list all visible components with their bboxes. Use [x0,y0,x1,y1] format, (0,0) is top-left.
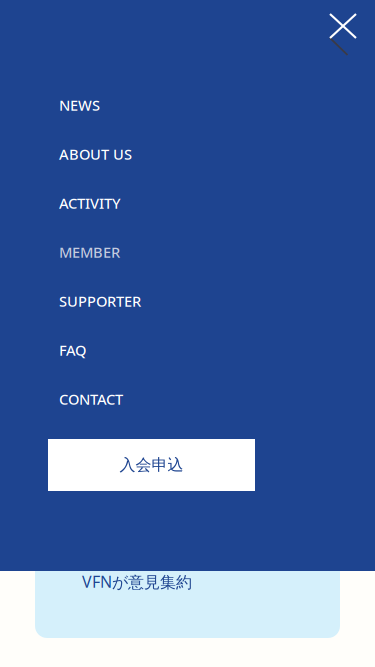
staticText: ACTIVITY [59,193,121,213]
staticText: ABOUT US [59,144,132,164]
button[interactable]: SUPPORTER [59,291,317,311]
button[interactable]: ABOUT US [59,144,317,164]
button[interactable]: MEMBER [59,242,317,262]
staticText: CONTACT [59,389,123,409]
staticText: NEWS [59,95,100,115]
button[interactable]: Close menu [320,8,366,62]
button[interactable]: CONTACT [59,389,317,409]
staticText: SUPPORTER [59,291,141,311]
button[interactable]: FAQ [59,340,317,360]
staticText: VFNが意見集約 [82,571,192,592]
button[interactable]: NEWS [59,95,317,115]
staticText: FAQ [59,340,86,360]
staticText: MEMBER [59,242,120,262]
button[interactable]: 入会申込 [48,439,255,491]
button[interactable]: ACTIVITY [59,193,317,213]
staticText: 入会申込 [119,455,183,475]
